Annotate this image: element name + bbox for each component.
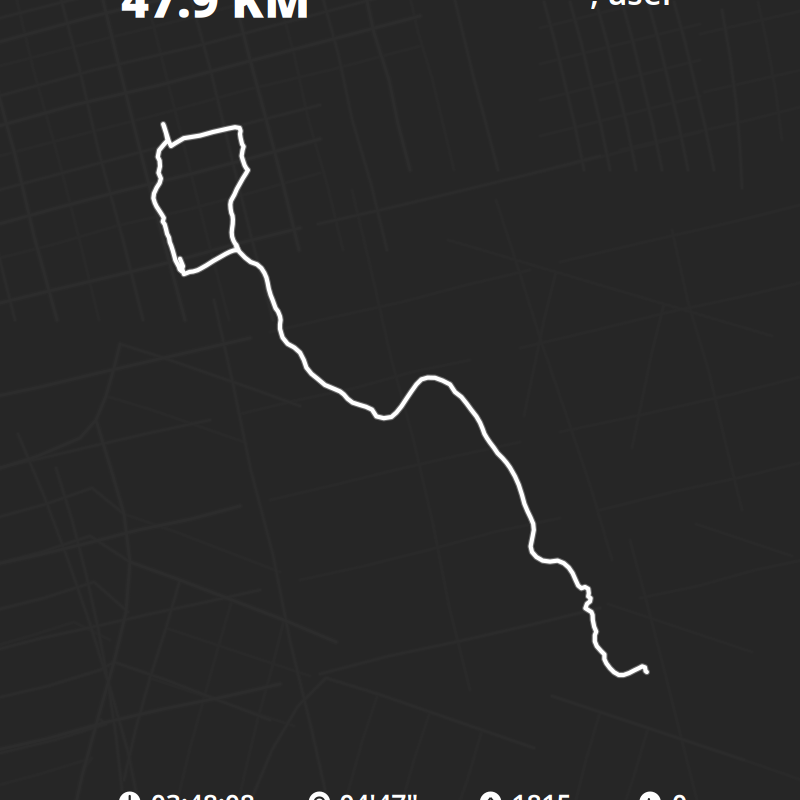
staticText: 0: [672, 786, 687, 800]
staticText: 47.9 KM: [121, 0, 310, 31]
staticText: 1815: [511, 786, 571, 800]
staticText: 04'47": [339, 786, 418, 800]
staticText: 03:48:08: [151, 786, 255, 800]
button[interactable]: user profile: [590, 0, 676, 14]
staticText: , user: [590, 0, 676, 14]
